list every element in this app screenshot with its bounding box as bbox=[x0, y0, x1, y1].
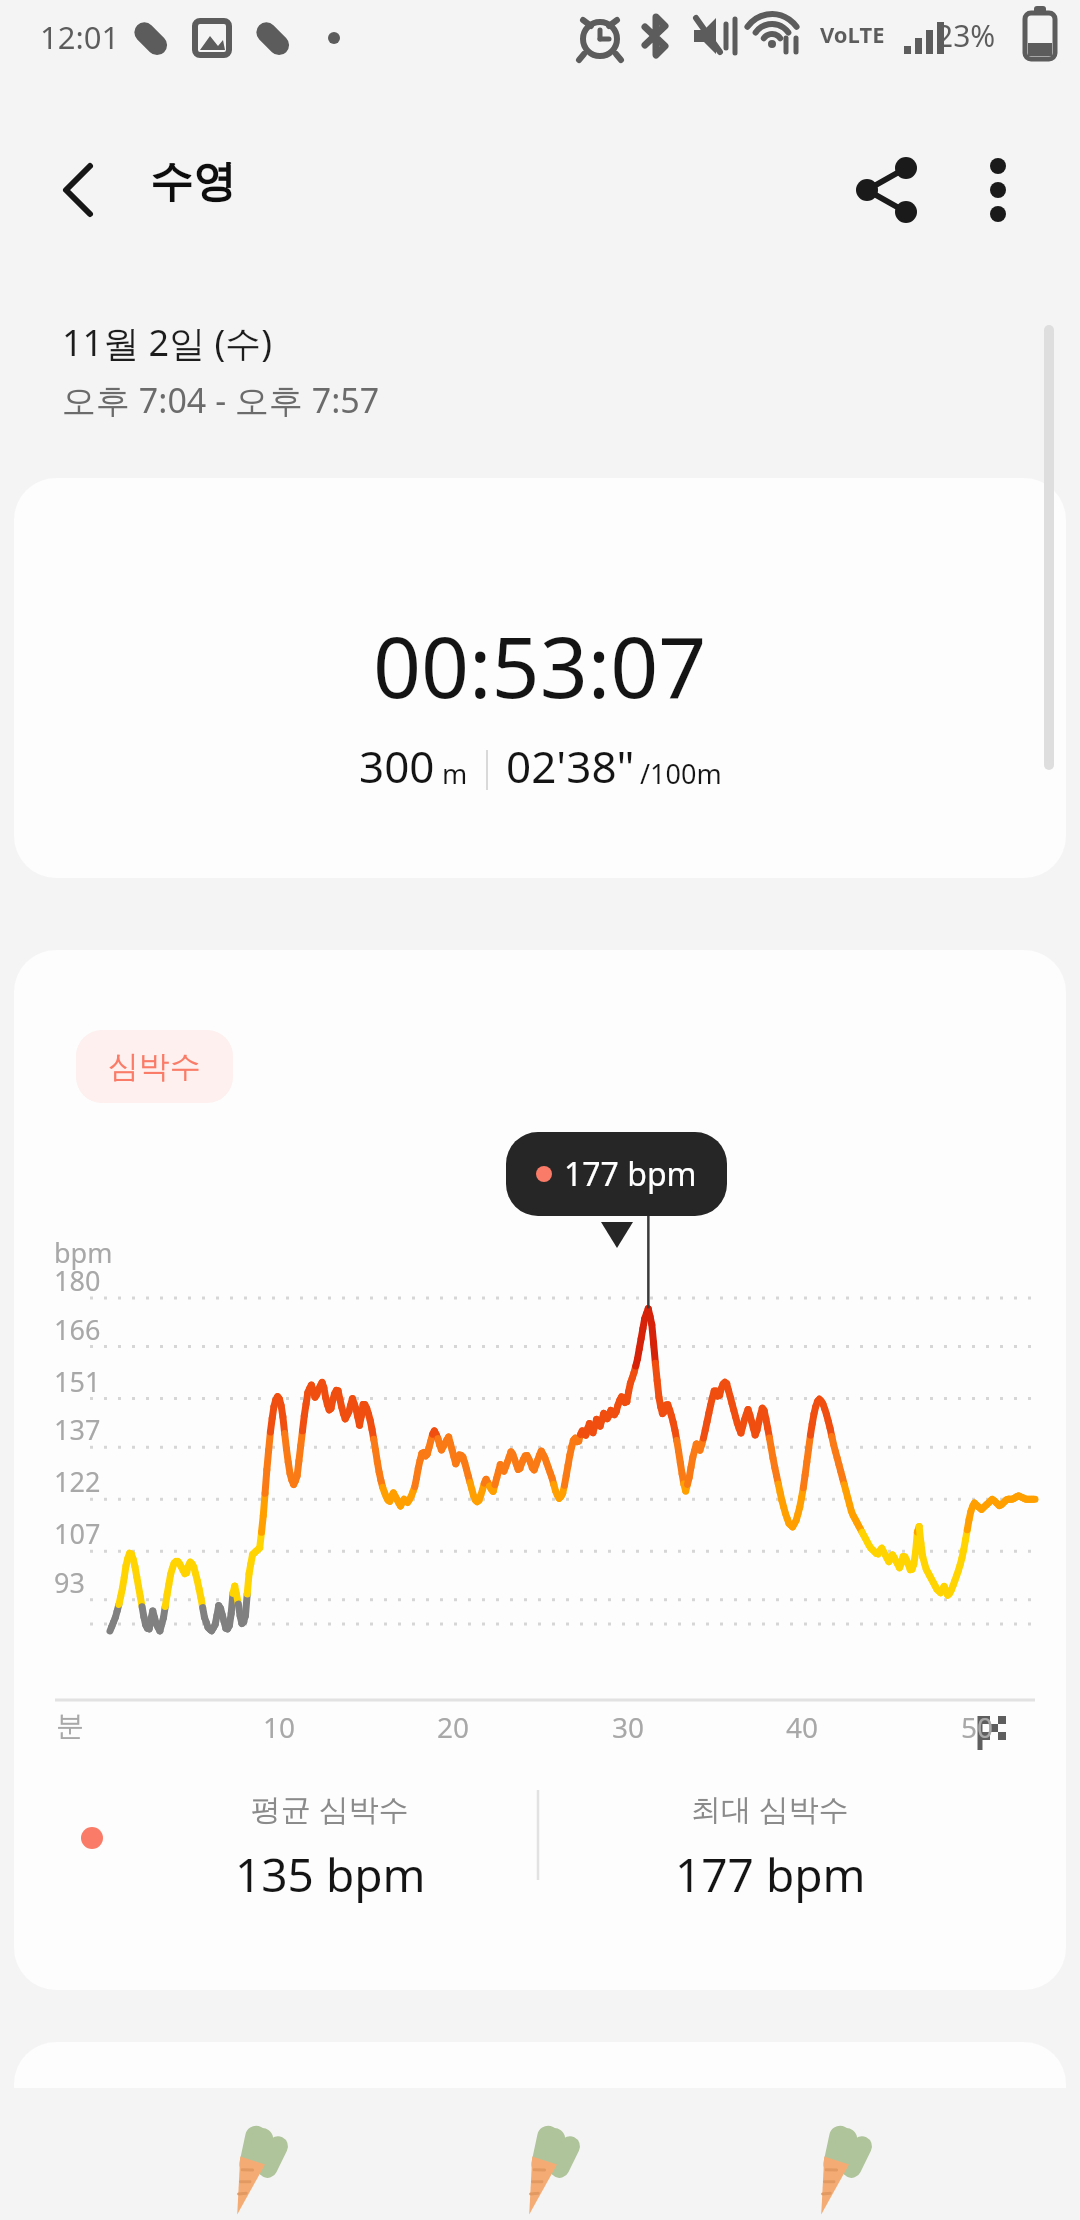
button[interactable]: Back bbox=[180, 2102, 316, 2220]
button[interactable]: Share bbox=[838, 140, 938, 240]
staticText: 최대 심박수 bbox=[691, 1788, 849, 1829]
staticText: bpm bbox=[54, 1234, 113, 1271]
staticText: 오후 7:04 - 오후 7:57 bbox=[62, 377, 380, 423]
staticText: m bbox=[442, 755, 468, 792]
staticText: 151 bbox=[54, 1363, 101, 1400]
staticText: 심박수 bbox=[108, 1047, 201, 1086]
staticText: 30 bbox=[612, 1708, 645, 1746]
staticText: 평균 심박수 bbox=[251, 1788, 409, 1829]
staticText: 122 bbox=[54, 1463, 101, 1500]
staticText: 177 bpm bbox=[675, 1843, 866, 1906]
button[interactable]: Recents bbox=[764, 2102, 900, 2220]
staticText: 166 bbox=[54, 1311, 101, 1348]
button[interactable]: 177 bpm bbox=[506, 1132, 727, 1216]
button[interactable]: 심박수 bbox=[76, 1030, 233, 1103]
staticText: 12:01 bbox=[40, 16, 120, 58]
button[interactable]: 심박수 구간 bbox=[14, 2042, 1066, 2220]
staticText: 20 bbox=[437, 1708, 470, 1746]
staticText: 107 bbox=[54, 1515, 101, 1552]
button[interactable]: More options bbox=[948, 140, 1048, 240]
staticText: /100m bbox=[640, 755, 722, 792]
staticText: 180 bbox=[54, 1262, 101, 1299]
staticText: 300 bbox=[359, 736, 435, 796]
staticText: 심박수 구간 bbox=[76, 2138, 276, 2190]
button[interactable]: Home bbox=[472, 2102, 608, 2220]
button[interactable]: 00:53:07 bbox=[14, 478, 1066, 878]
staticText: 93 bbox=[54, 1564, 85, 1601]
staticText: 135 bpm bbox=[235, 1843, 426, 1906]
staticText: 50 bbox=[961, 1708, 994, 1746]
staticText: 137 bbox=[54, 1411, 101, 1448]
staticText: 11월 2일 (수) bbox=[62, 318, 273, 367]
staticText: 10 bbox=[263, 1708, 296, 1746]
staticText: 02'38" bbox=[506, 736, 635, 796]
staticText: 분 bbox=[56, 1708, 84, 1743]
staticText: 40 bbox=[786, 1708, 819, 1746]
staticText: 수영 bbox=[150, 155, 236, 209]
staticText: VoLTE bbox=[820, 19, 885, 49]
staticText: 177 bpm bbox=[564, 1152, 697, 1196]
button[interactable]: Back bbox=[28, 140, 128, 240]
staticText: 23% bbox=[936, 15, 996, 56]
staticText: 00:53:07 bbox=[373, 608, 707, 722]
